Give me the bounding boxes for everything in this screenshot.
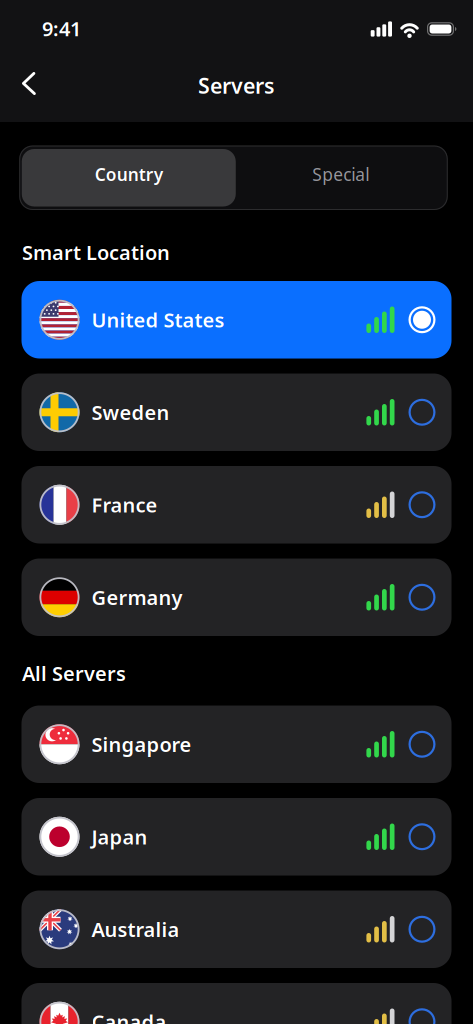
button[interactable]: Special xyxy=(236,149,446,206)
button[interactable]: Country xyxy=(22,149,236,206)
button[interactable]: Japan xyxy=(21,798,451,875)
staticText: France xyxy=(91,491,157,518)
staticText: Country xyxy=(95,163,163,186)
button[interactable]: Germany xyxy=(21,558,451,636)
staticText: Germany xyxy=(91,584,182,611)
staticText: 9:41 xyxy=(42,15,81,42)
button[interactable]: Australia xyxy=(21,890,451,968)
staticText: Australia xyxy=(91,916,179,943)
staticText: United States xyxy=(91,306,224,333)
staticText: Singapore xyxy=(91,731,191,758)
staticText: All Servers xyxy=(22,660,126,687)
staticText: Special xyxy=(312,163,369,186)
button[interactable]: Sweden xyxy=(21,373,451,451)
button[interactable]: Canada xyxy=(21,983,451,1024)
button[interactable]: Back xyxy=(0,69,36,106)
button[interactable]: Singapore xyxy=(21,705,451,783)
button[interactable]: France xyxy=(21,466,451,543)
staticText: Servers xyxy=(198,71,275,100)
staticText: Smart Location xyxy=(22,239,170,266)
staticText: Japan xyxy=(91,823,147,850)
staticText: Sweden xyxy=(91,399,169,426)
staticText: Canada xyxy=(91,1008,166,1024)
button[interactable]: United States xyxy=(21,281,451,358)
